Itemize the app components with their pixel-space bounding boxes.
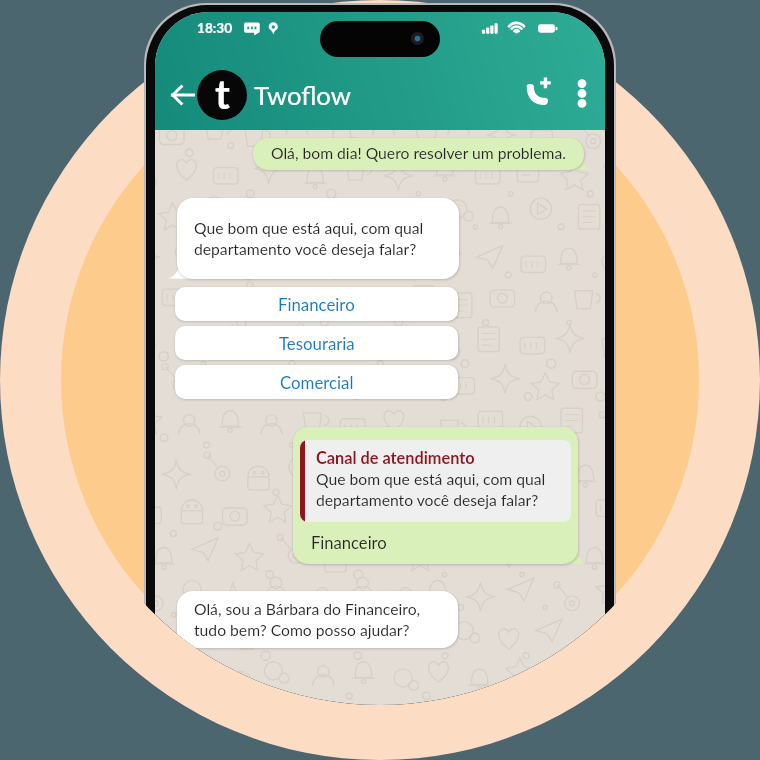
button[interactable]: Add call xyxy=(521,73,557,111)
staticText: Tesouraria xyxy=(279,333,355,353)
button[interactable]: Que bom que está aqui, com qual departam… xyxy=(177,198,459,279)
staticText: 18:30 xyxy=(197,20,233,36)
staticText: Comercial xyxy=(280,372,354,392)
staticText: Financeiro xyxy=(278,294,355,314)
staticText: Que bom que está aqui, com qual departam… xyxy=(316,470,546,509)
button[interactable]: Olá, sou a Bárbara do Financeiro, tudo b… xyxy=(177,591,458,648)
staticText: Olá, sou a Bárbara do Financeiro, tudo b… xyxy=(194,600,421,639)
button[interactable]: Tesouraria xyxy=(175,326,458,360)
button[interactable]: Comercial xyxy=(175,365,458,399)
button[interactable]: Profile picture xyxy=(197,70,247,120)
staticText: Que bom que está aqui, com qual departam… xyxy=(194,219,424,258)
button[interactable]: Olá, bom dia! Quero resolver um problema… xyxy=(253,138,584,170)
staticText: Olá, bom dia! Quero resolver um problema… xyxy=(271,144,566,163)
staticText: Financeiro xyxy=(311,533,387,553)
staticText: Canal de atendimento xyxy=(316,448,475,468)
button[interactable]: Canal de atendimento xyxy=(293,427,578,564)
staticText: t xyxy=(215,70,230,118)
button[interactable]: Back xyxy=(168,81,197,109)
button[interactable]: Financeiro xyxy=(175,287,458,321)
button[interactable]: More options xyxy=(569,74,595,112)
staticText: Twoflow xyxy=(254,80,351,111)
